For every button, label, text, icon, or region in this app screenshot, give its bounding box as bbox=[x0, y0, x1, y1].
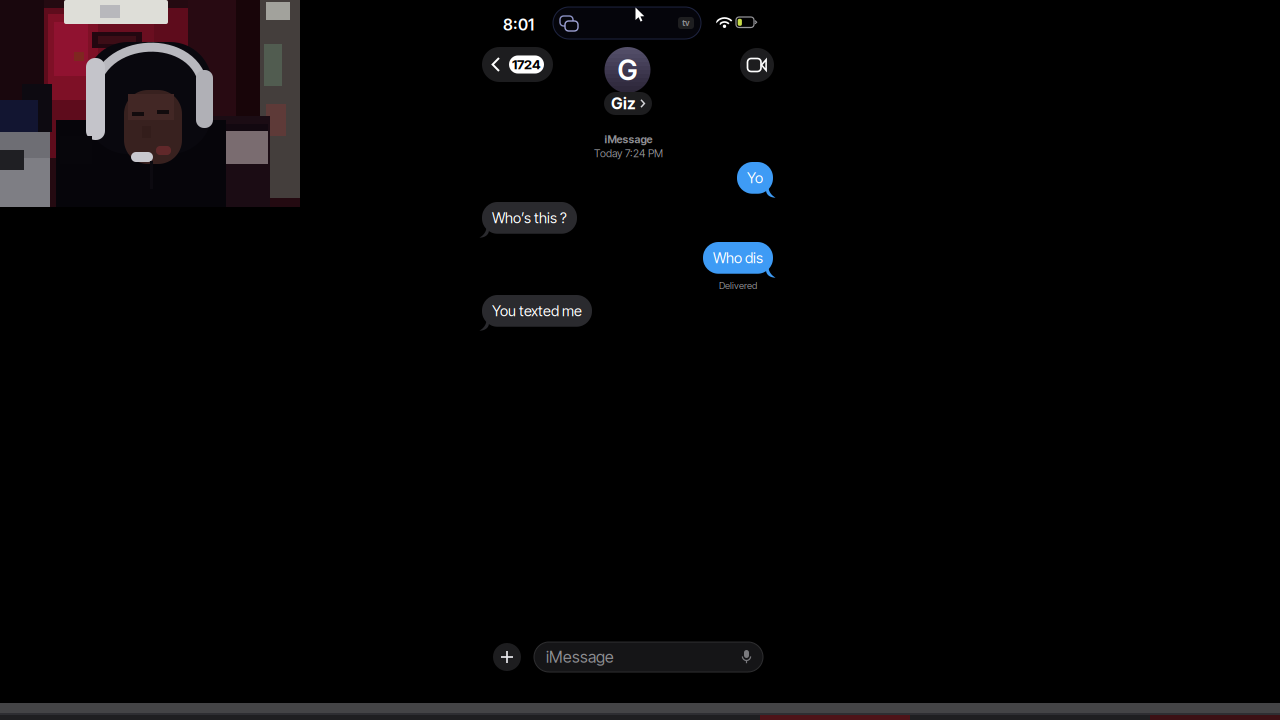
staticText: You texted me bbox=[492, 302, 582, 320]
button[interactable]: Add attachment bbox=[493, 643, 521, 671]
staticText: 1724 bbox=[512, 56, 541, 72]
staticText: iMessage bbox=[604, 133, 652, 146]
staticText: Today 7:24 PM bbox=[594, 147, 663, 160]
button[interactable]: Giz, contact details bbox=[604, 48, 652, 115]
staticText: Yo bbox=[747, 169, 763, 187]
staticText: Giz bbox=[611, 94, 636, 113]
staticText: Who dis bbox=[713, 249, 763, 267]
staticText: Delivered bbox=[719, 280, 757, 291]
button[interactable]: FaceTime bbox=[740, 48, 774, 82]
staticText: Who’s this ? bbox=[492, 209, 567, 227]
staticText: tv bbox=[682, 18, 690, 28]
staticText: iMessage bbox=[546, 647, 614, 667]
staticText: G bbox=[617, 53, 637, 87]
button[interactable]: Back to Messages, 1724 unread bbox=[482, 47, 553, 82]
staticText: 8:01 bbox=[503, 15, 534, 34]
button[interactable]: iMessage text field bbox=[534, 642, 763, 672]
